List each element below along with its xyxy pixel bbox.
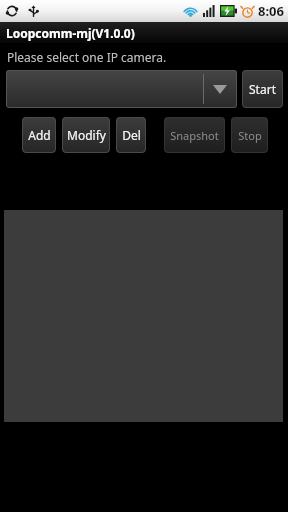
- staticText: Snapshot: [170, 128, 219, 143]
- staticText: Start: [249, 81, 276, 97]
- button[interactable]: Stop: [231, 117, 268, 153]
- button[interactable]: Snapshot: [164, 117, 225, 153]
- button[interactable]: Start: [242, 70, 283, 108]
- staticText: 8:06: [258, 2, 284, 20]
- button[interactable]: Select IP camera: [6, 70, 237, 108]
- button[interactable]: Modify: [62, 117, 110, 153]
- staticText: Del: [122, 127, 141, 143]
- button[interactable]: Add: [22, 117, 56, 153]
- staticText: Modify: [67, 127, 106, 143]
- staticText: Please select one IP camera.: [7, 49, 167, 65]
- staticText: Loopcomm-mj(V1.0.0): [6, 25, 135, 41]
- staticText: Stop: [238, 128, 262, 143]
- button[interactable]: Del: [116, 117, 146, 153]
- staticText: Add: [28, 127, 51, 143]
